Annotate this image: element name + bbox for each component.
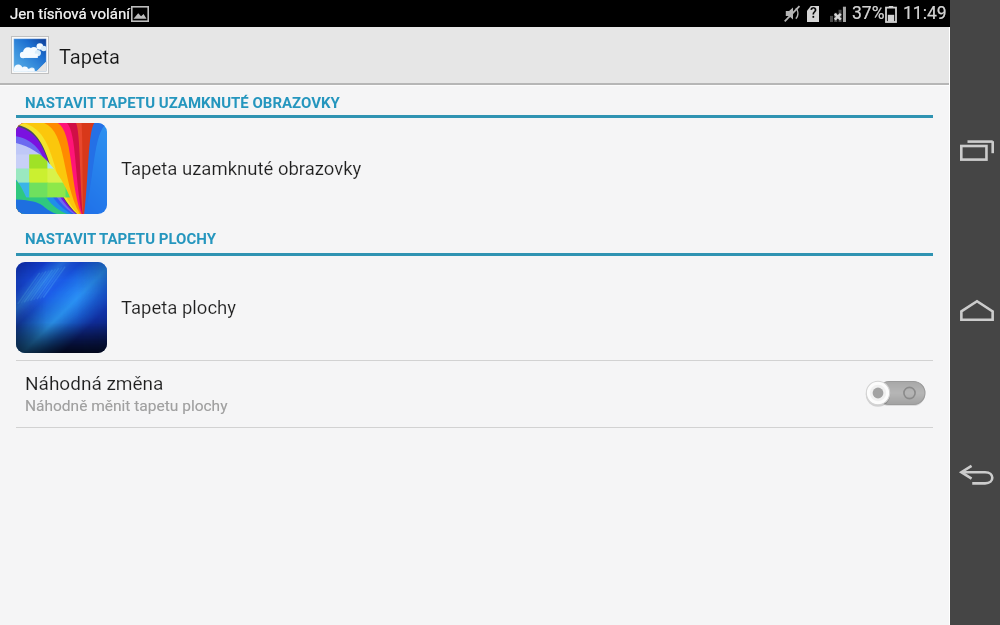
button[interactable]: Home xyxy=(952,285,1000,335)
button[interactable]: Back xyxy=(952,450,1000,500)
button[interactable]: Tapeta uzamknuté obrazovky xyxy=(0,119,950,218)
staticText: 11:49 xyxy=(903,3,947,24)
button[interactable]: Náhodná změna xyxy=(866,377,927,409)
staticText: 37% xyxy=(852,3,885,24)
button[interactable]: Tapeta plochy xyxy=(0,258,950,357)
button[interactable]: Recents xyxy=(952,125,1000,175)
staticText: Tapeta xyxy=(59,45,120,68)
button[interactable]: Tapeta xyxy=(11,36,49,74)
staticText: NASTAVIT TAPETU UZAMKNUTÉ OBRAZOVKY xyxy=(25,94,340,112)
button[interactable]: Náhodná změna xyxy=(0,360,950,426)
staticText: Tapeta uzamknuté obrazovky xyxy=(121,158,362,180)
staticText: Jen tísňová volání xyxy=(10,5,130,23)
staticText: ? xyxy=(810,5,817,21)
staticText: Tapeta plochy xyxy=(121,297,237,319)
staticText: Náhodně měnit tapetu plochy xyxy=(25,397,228,415)
staticText: NASTAVIT TAPETU PLOCHY xyxy=(25,230,216,248)
staticText: Náhodná změna xyxy=(25,372,164,394)
